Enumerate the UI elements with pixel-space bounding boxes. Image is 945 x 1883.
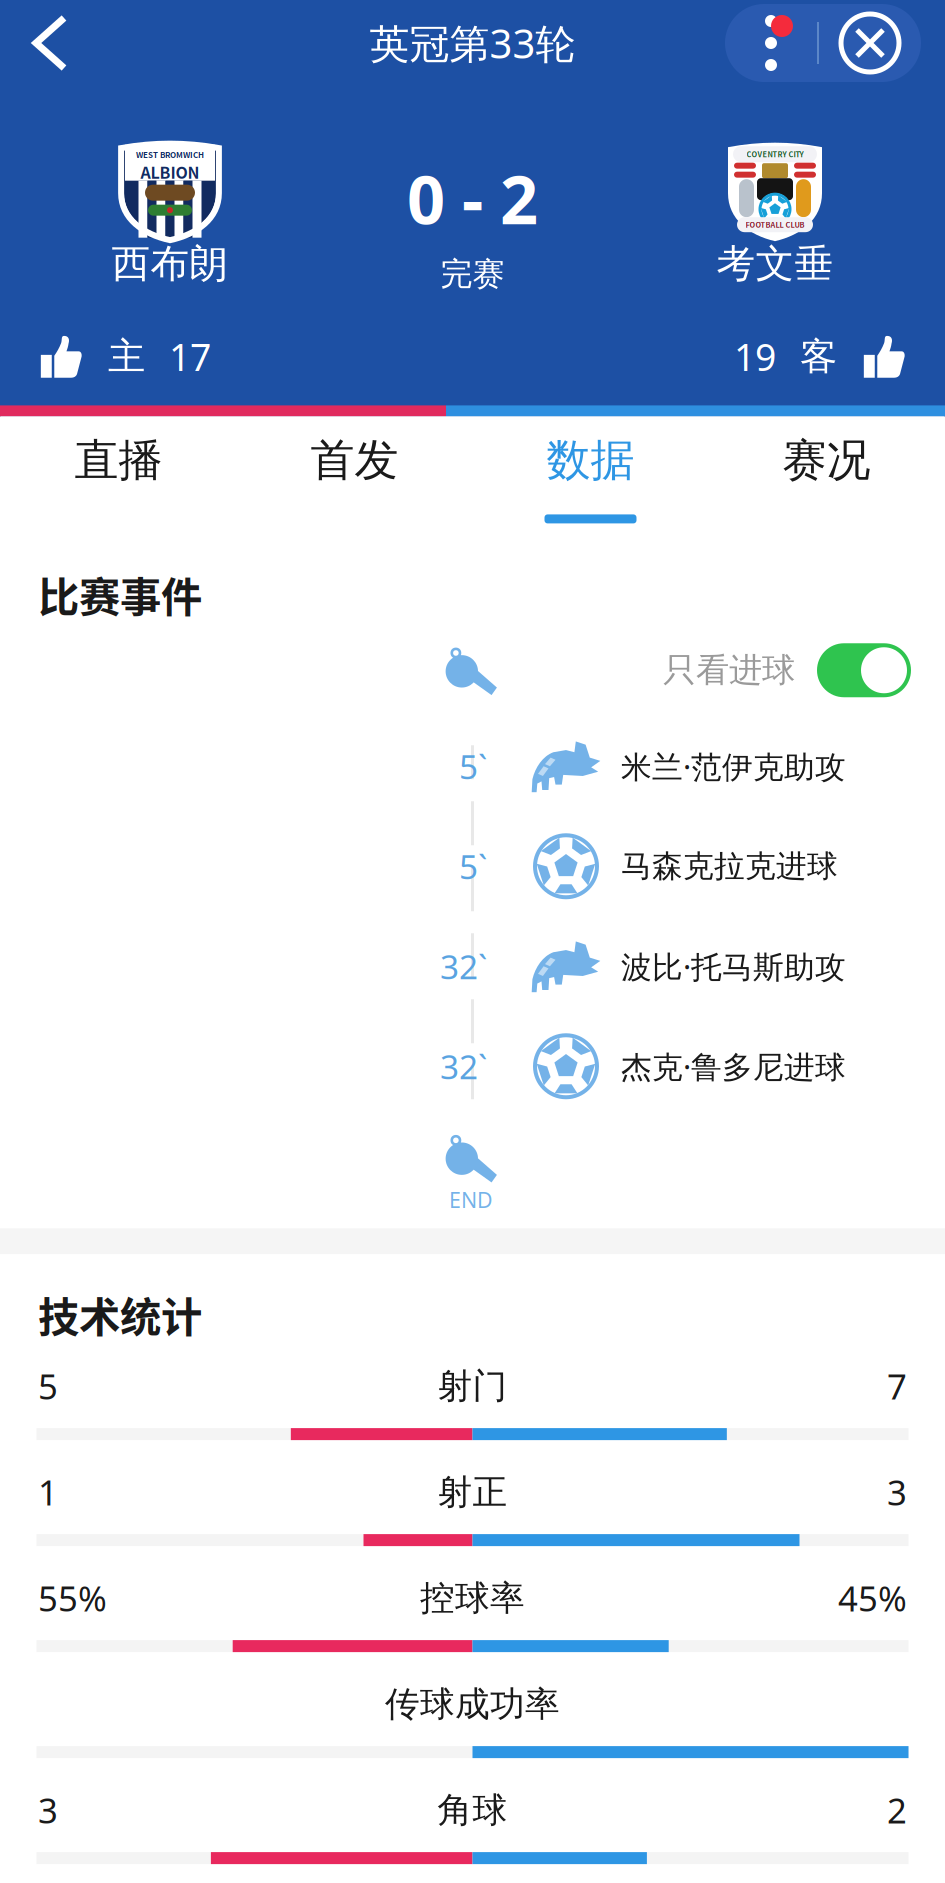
- staticText: 直播: [74, 433, 162, 487]
- button[interactable]: 数据: [472, 417, 708, 545]
- staticText: 射门: [437, 1365, 507, 1407]
- staticText: FOOTBALL CLUB: [745, 219, 804, 230]
- staticText: 客: [800, 334, 837, 380]
- button[interactable]: More options: [725, 4, 817, 82]
- staticText: 比赛事件: [38, 564, 202, 624]
- staticText: 控球率: [420, 1577, 525, 1619]
- button[interactable]: Back: [0, 1, 100, 85]
- staticText: 只看进球: [663, 650, 795, 691]
- button[interactable]: 19: [734, 318, 945, 395]
- staticText: 完赛: [440, 254, 504, 294]
- staticText: 传球成功率: [385, 1683, 560, 1725]
- staticText: ALBION: [140, 160, 199, 183]
- staticText: 首发: [310, 433, 398, 487]
- staticText: 西布朗: [111, 240, 228, 288]
- staticText: 波比·托马斯助攻: [621, 946, 846, 987]
- staticText: 角球: [437, 1789, 507, 1831]
- staticText: 19: [734, 332, 776, 381]
- staticText: 45%: [838, 1575, 907, 1621]
- staticText: 射正: [437, 1471, 507, 1513]
- staticText: WEST BROMWICH: [136, 149, 204, 160]
- staticText: 1: [38, 1469, 58, 1515]
- staticText: 7: [887, 1363, 907, 1409]
- staticText: 5`: [459, 744, 487, 788]
- button[interactable]: Only goals: [795, 643, 945, 697]
- staticText: 数据: [546, 433, 634, 487]
- staticText: 马森克拉克进球: [621, 847, 838, 885]
- staticText: 17: [169, 332, 211, 381]
- staticText: 3: [887, 1469, 907, 1515]
- button[interactable]: 赛况: [708, 417, 944, 545]
- staticText: 技术统计: [38, 1284, 202, 1344]
- button[interactable]: 首发: [236, 417, 472, 545]
- staticText: 3: [38, 1787, 58, 1833]
- button[interactable]: 直播: [0, 417, 236, 545]
- staticText: 杰克·鲁多尼进球: [621, 1046, 846, 1087]
- staticText: END: [449, 1186, 493, 1214]
- staticText: 0 - 2: [407, 154, 538, 242]
- staticText: 32`: [440, 1044, 487, 1088]
- staticText: 32`: [440, 944, 487, 988]
- staticText: 55%: [38, 1575, 107, 1621]
- staticText: 考文垂: [716, 240, 833, 288]
- staticText: 主: [108, 334, 145, 380]
- staticText: 5: [38, 1363, 58, 1409]
- staticText: 5`: [459, 844, 487, 888]
- staticText: 米兰·范伊克助攻: [621, 746, 846, 787]
- staticText: 英冠第33轮: [369, 16, 575, 69]
- button[interactable]: Close: [819, 4, 921, 82]
- staticText: 赛况: [782, 433, 870, 487]
- button[interactable]: 主: [0, 318, 211, 395]
- staticText: COVENTRY CITY: [746, 149, 803, 159]
- staticText: 2: [887, 1787, 907, 1833]
